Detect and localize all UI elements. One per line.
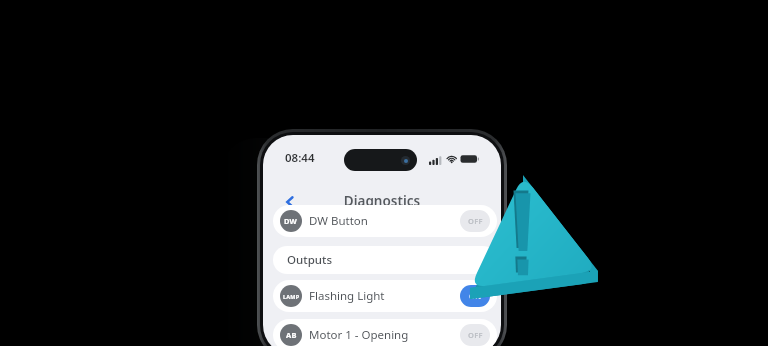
staticText: 08:44 bbox=[285, 150, 315, 166]
staticText: OFF bbox=[468, 330, 483, 340]
staticText: OFF bbox=[468, 216, 483, 226]
staticText: Diagnostics bbox=[263, 192, 501, 210]
staticText: DW bbox=[284, 216, 298, 226]
staticText: Motor 1 - Opening bbox=[309, 327, 409, 343]
button[interactable]: LAMP bbox=[273, 280, 497, 312]
button[interactable]: Back bbox=[276, 189, 304, 215]
staticText: AB bbox=[286, 330, 297, 340]
button[interactable]: Outputs bbox=[273, 246, 497, 274]
staticText: Outputs bbox=[287, 252, 332, 268]
button[interactable]: AB bbox=[273, 319, 497, 346]
button[interactable]: DW bbox=[273, 205, 497, 237]
button[interactable]: OFF bbox=[460, 210, 490, 232]
staticText: DW Button bbox=[309, 213, 368, 229]
staticText: Flashing Light bbox=[309, 288, 385, 304]
staticText: ON bbox=[469, 291, 482, 301]
staticText: LAMP bbox=[283, 293, 300, 300]
button[interactable]: Warning bbox=[452, 160, 608, 302]
button[interactable]: OFF bbox=[460, 324, 490, 346]
button[interactable]: ON bbox=[460, 285, 490, 307]
